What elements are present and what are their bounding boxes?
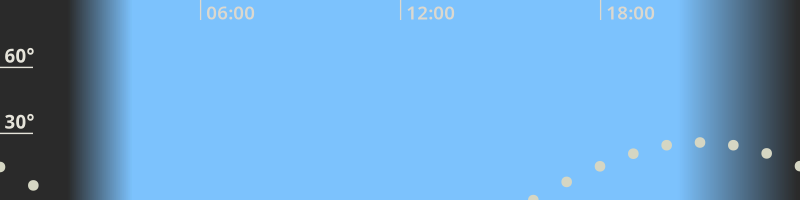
staticText: 18:00: [606, 0, 655, 25]
button[interactable]: Hourly forecast chart: [0, 0, 800, 200]
staticText: 30°: [4, 109, 34, 134]
staticText: 12:00: [406, 0, 455, 25]
staticText: 06:00: [206, 0, 255, 25]
staticText: 60°: [4, 43, 34, 68]
